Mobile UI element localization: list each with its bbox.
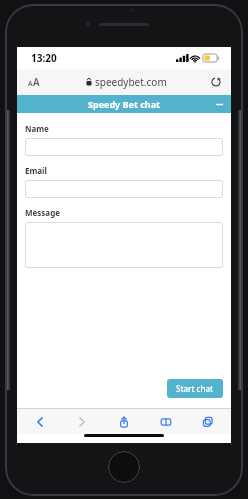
button[interactable]: Tabs — [197, 411, 219, 433]
staticText: Email — [25, 165, 47, 176]
button[interactable]: Share — [113, 411, 135, 433]
button[interactable]: Back — [29, 411, 51, 433]
staticText: A — [33, 75, 40, 89]
staticText: Start chat — [176, 383, 214, 394]
staticText: A — [28, 79, 33, 89]
button[interactable]: Minimize chat — [213, 98, 225, 110]
staticText: Speedy Bet chat — [88, 98, 160, 110]
button[interactable]: Start chat — [167, 379, 223, 398]
button[interactable]: Name input — [25, 138, 223, 156]
button[interactable]: Reload — [208, 74, 224, 90]
staticText: speedybet.com — [95, 75, 167, 89]
button[interactable]: Speedy Bet chat — [17, 95, 231, 113]
button[interactable]: Email input — [25, 180, 223, 198]
staticText: 13:20 — [31, 51, 57, 65]
staticText: Message — [25, 207, 60, 218]
button[interactable]: Forward — [71, 411, 93, 433]
button[interactable]: Message input — [25, 222, 223, 268]
button[interactable]: Bookmarks — [155, 411, 177, 433]
button[interactable]: Text size — [24, 73, 44, 91]
staticText: Name — [25, 123, 49, 134]
button[interactable]: Home — [108, 451, 140, 483]
